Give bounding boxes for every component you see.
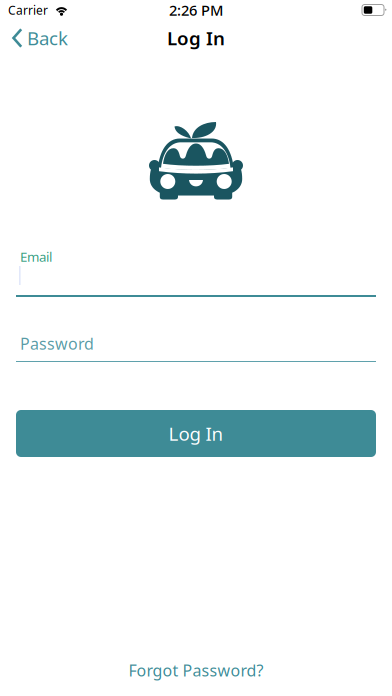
staticText: Back — [27, 26, 68, 50]
staticText: Carrier — [8, 2, 48, 18]
button[interactable]: Back — [0, 21, 78, 55]
button[interactable]: Log In — [0, 410, 392, 457]
staticText: Log In — [167, 26, 225, 50]
staticText: Log In — [168, 421, 223, 446]
button[interactable]: Forgot Password? — [114, 654, 277, 687]
staticText: Email — [20, 248, 52, 265]
staticText: 2:26 PM — [169, 0, 223, 20]
staticText: Password — [20, 333, 94, 354]
staticText: Forgot Password? — [128, 660, 263, 681]
